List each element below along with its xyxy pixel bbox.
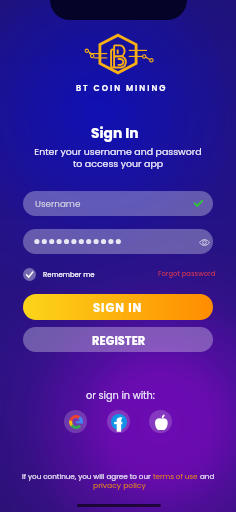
staticText: If you continue, you will agree to our [22, 471, 153, 481]
staticText: Remember me [43, 270, 95, 280]
button[interactable]: Show password [195, 233, 213, 251]
button[interactable]: Remember me [23, 268, 88, 281]
staticText: Forgot password [158, 269, 216, 279]
button[interactable]: Username [23, 191, 213, 216]
button[interactable]: REGISTER [23, 327, 213, 352]
staticText: BT COIN MINING [76, 83, 168, 94]
button[interactable]: privacy policy [93, 480, 146, 491]
staticText: Username [35, 198, 81, 210]
button[interactable]: Sign in with Google [64, 410, 87, 433]
staticText: terms of use [153, 471, 198, 481]
staticText: Sign In [91, 124, 139, 143]
button[interactable]: terms of use [153, 471, 198, 481]
button[interactable]: Forgot password [155, 269, 213, 279]
staticText: privacy policy [93, 480, 146, 491]
staticText: Enter your username and password to acce… [0, 145, 236, 171]
button[interactable]: Show password [23, 229, 213, 254]
staticText: REGISTER [92, 333, 146, 349]
button[interactable]: Sign in with Apple [149, 410, 172, 433]
button[interactable]: SIGN IN [23, 294, 213, 320]
staticText: or sign in with: [86, 389, 155, 403]
staticText: SIGN IN [93, 300, 143, 316]
button[interactable]: Sign in with Facebook [107, 410, 130, 433]
staticText: and [198, 471, 215, 481]
